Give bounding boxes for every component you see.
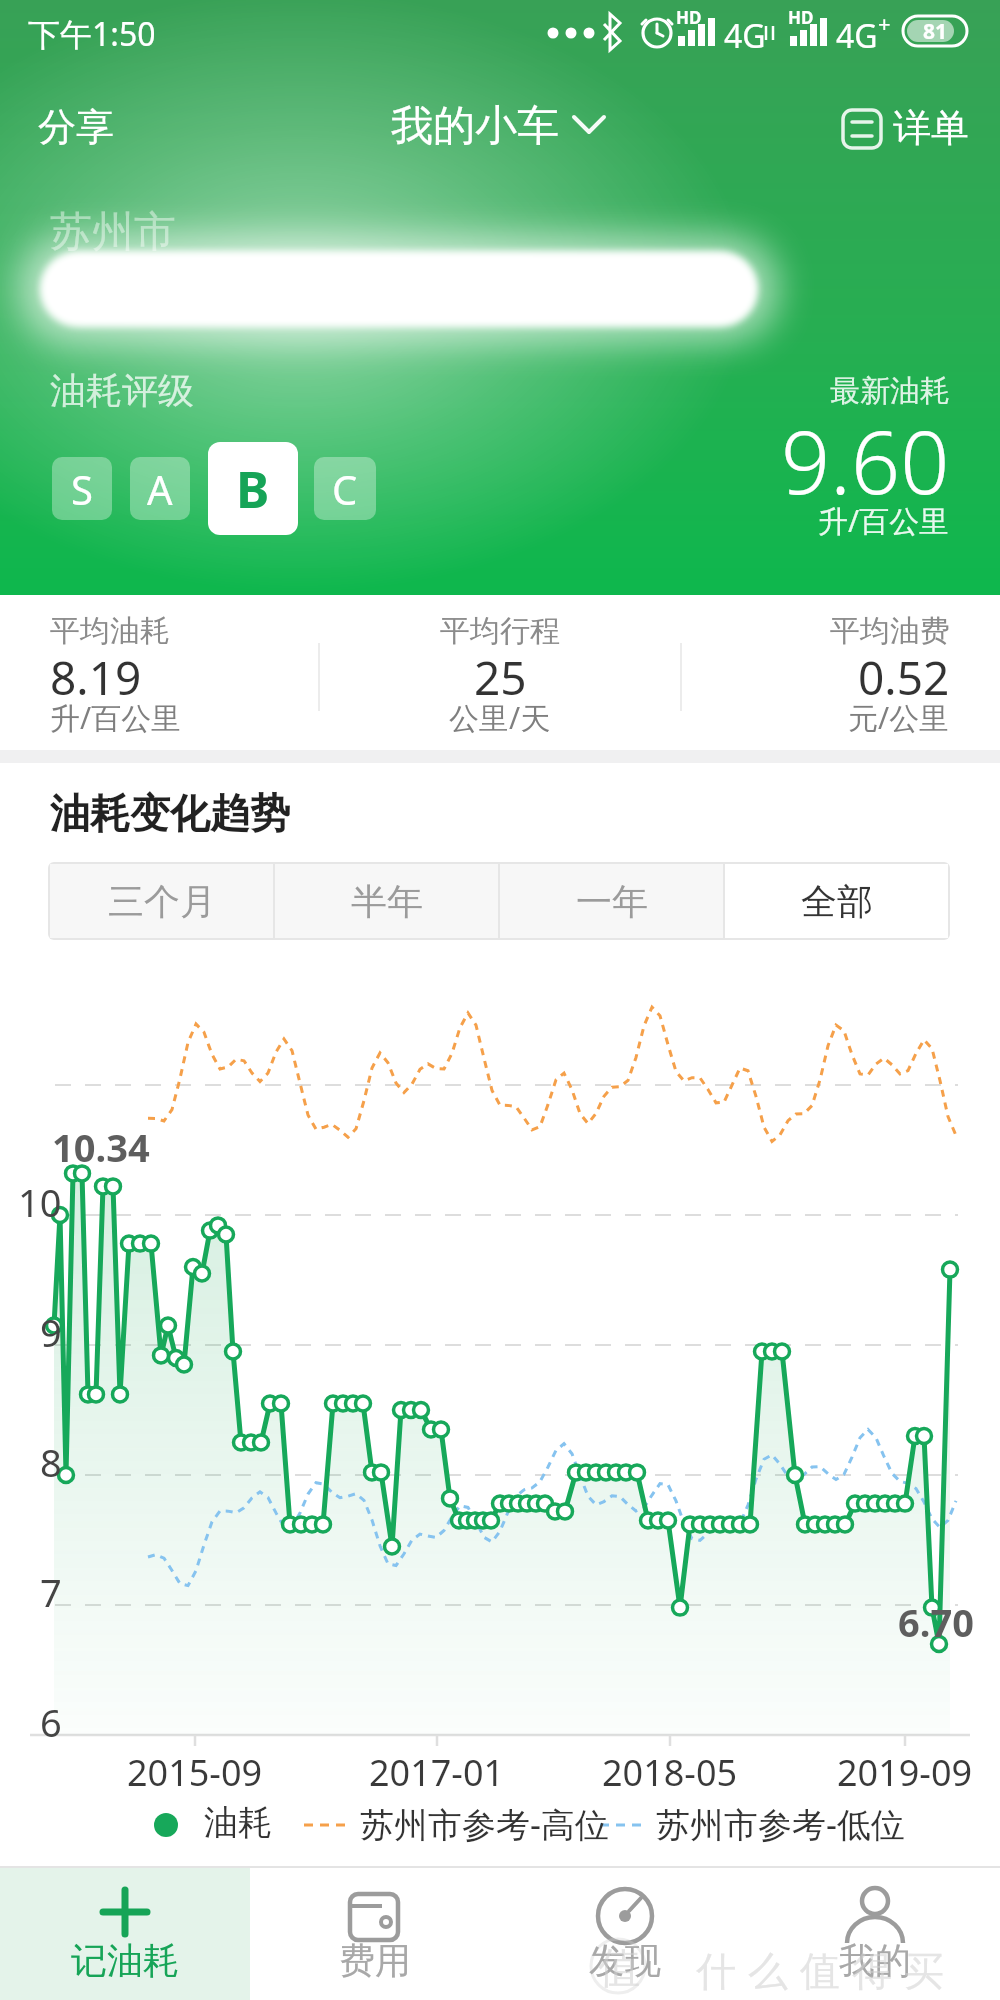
staticText: 公里/天 — [449, 697, 551, 738]
staticText: S — [71, 462, 93, 516]
staticText: 油耗评级 — [50, 368, 194, 413]
staticText: 8 — [40, 1436, 62, 1488]
staticText: 8.19 — [50, 646, 142, 709]
button[interactable] — [750, 1868, 1000, 2000]
staticText: 0.52 — [858, 646, 950, 709]
staticText: 6 — [40, 1696, 62, 1748]
staticText: 2018-05 — [602, 1748, 738, 1797]
staticText: 什么值得买 — [690, 1946, 950, 1996]
button[interactable]: S — [52, 457, 112, 520]
staticText: 2019-09 — [837, 1748, 973, 1797]
staticText: 油耗变化趋势 — [50, 788, 290, 838]
button[interactable]: 半年 — [275, 864, 498, 938]
staticText: 10 — [18, 1176, 62, 1228]
staticText: 发现 — [589, 1938, 661, 1983]
staticText: 4G — [724, 14, 766, 58]
staticText: 平均行程 — [440, 612, 560, 650]
staticText: 最新油耗 — [830, 372, 950, 410]
button[interactable] — [250, 1868, 500, 2000]
staticText: + — [878, 8, 891, 38]
staticText: 费用 — [339, 1938, 411, 1983]
staticText: 6.70 — [898, 1596, 974, 1648]
staticText: 苏州市参考-低位 — [656, 1801, 905, 1847]
button[interactable]: 三个月 — [50, 864, 273, 938]
button[interactable]: 一年 — [500, 864, 723, 938]
staticText: 分享 — [38, 103, 114, 151]
staticText: 10.34 — [52, 1121, 150, 1173]
staticText: 9 — [40, 1306, 62, 1358]
button[interactable]: C — [314, 457, 376, 520]
button[interactable]: A — [130, 457, 190, 520]
staticText: 7 — [40, 1566, 62, 1618]
staticText: 我的 — [839, 1938, 911, 1983]
staticText: 2015-09 — [127, 1748, 263, 1797]
staticText: 4G — [836, 14, 878, 58]
staticText: 三个月 — [108, 879, 216, 924]
staticText: 我的小车 — [391, 100, 559, 153]
staticText: HD — [788, 6, 814, 29]
button[interactable]: 详单 — [893, 104, 969, 152]
staticText: 25 — [474, 646, 527, 709]
staticText: 记油耗 — [71, 1938, 179, 1983]
button[interactable]: B — [208, 442, 298, 535]
button[interactable]: 全部 — [725, 864, 948, 938]
staticText: 苏州市 — [50, 206, 176, 259]
staticText: 升/百公里 — [50, 697, 182, 738]
staticText: 值 — [598, 1942, 640, 1995]
button[interactable]: 分享 — [38, 103, 114, 151]
staticText: 2017-01 — [369, 1748, 505, 1797]
staticText: 油耗 — [204, 1801, 272, 1844]
staticText: 下午1:50 — [28, 12, 156, 56]
staticText: B — [236, 455, 270, 523]
staticText: 81 — [923, 17, 948, 46]
staticText: 半年 — [351, 879, 423, 924]
staticText: 9.60 — [781, 402, 950, 519]
button[interactable] — [500, 1868, 750, 2000]
staticText: 平均油费 — [830, 612, 950, 650]
staticText: 全部 — [801, 879, 873, 924]
staticText: 升/百公里 — [818, 500, 950, 541]
staticText: 元/公里 — [848, 697, 950, 738]
staticText: 详单 — [893, 104, 969, 152]
staticText: 一年 — [576, 879, 648, 924]
button[interactable] — [0, 1868, 250, 2000]
staticText: HD — [676, 6, 702, 29]
staticText: 苏州市参考-高位 — [360, 1801, 609, 1847]
button[interactable]: 我的小车 — [330, 100, 620, 153]
staticText: A — [147, 462, 173, 516]
staticText: 平均油耗 — [50, 612, 170, 650]
staticText: C — [332, 462, 358, 516]
